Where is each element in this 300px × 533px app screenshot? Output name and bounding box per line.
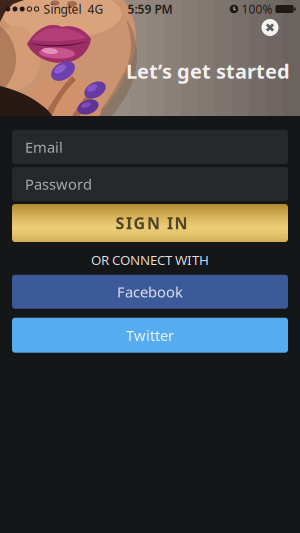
staticText: Facebook <box>117 282 183 301</box>
staticText: 5:59 PM <box>127 1 172 17</box>
button[interactable]: SIGN IN <box>12 204 288 242</box>
staticText: OR CONNECT WITH <box>91 251 209 269</box>
button[interactable]: Facebook <box>12 275 288 309</box>
staticText: Password <box>25 174 92 194</box>
staticText: Twitter <box>126 325 174 345</box>
staticText: 100% <box>241 1 272 17</box>
button[interactable]: Email <box>12 130 288 164</box>
button[interactable]: Twitter <box>12 318 288 353</box>
staticText: Email <box>25 137 63 157</box>
staticText: Singtel 4G <box>43 1 103 17</box>
staticText: SIGN IN <box>115 212 187 234</box>
button[interactable]: Close <box>261 19 278 36</box>
button[interactable]: Password <box>12 167 288 201</box>
staticText: Let’s get started <box>126 58 290 84</box>
